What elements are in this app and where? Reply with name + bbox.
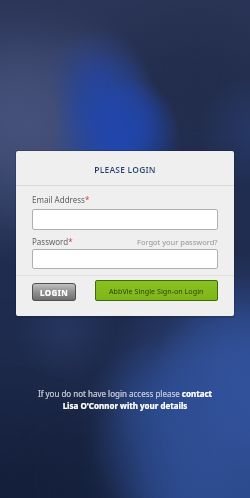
button[interactable]: LOGIN [32,283,76,301]
staticText: Lisa O'Connor with your details [0,400,250,411]
button[interactable] [32,249,218,269]
button[interactable]: AbbVie Single Sign-on Login [95,280,218,301]
button[interactable]: If you do not have login access please c… [0,388,250,399]
button[interactable] [32,209,218,230]
staticText: Email Address* [32,194,90,205]
button[interactable]: Forgot your password? [137,237,218,247]
staticText: PLEASE LOGIN [16,164,234,176]
staticText: LOGIN [40,287,69,298]
staticText: Password* [32,236,73,247]
staticText: AbbVie Single Sign-on Login [109,286,204,296]
